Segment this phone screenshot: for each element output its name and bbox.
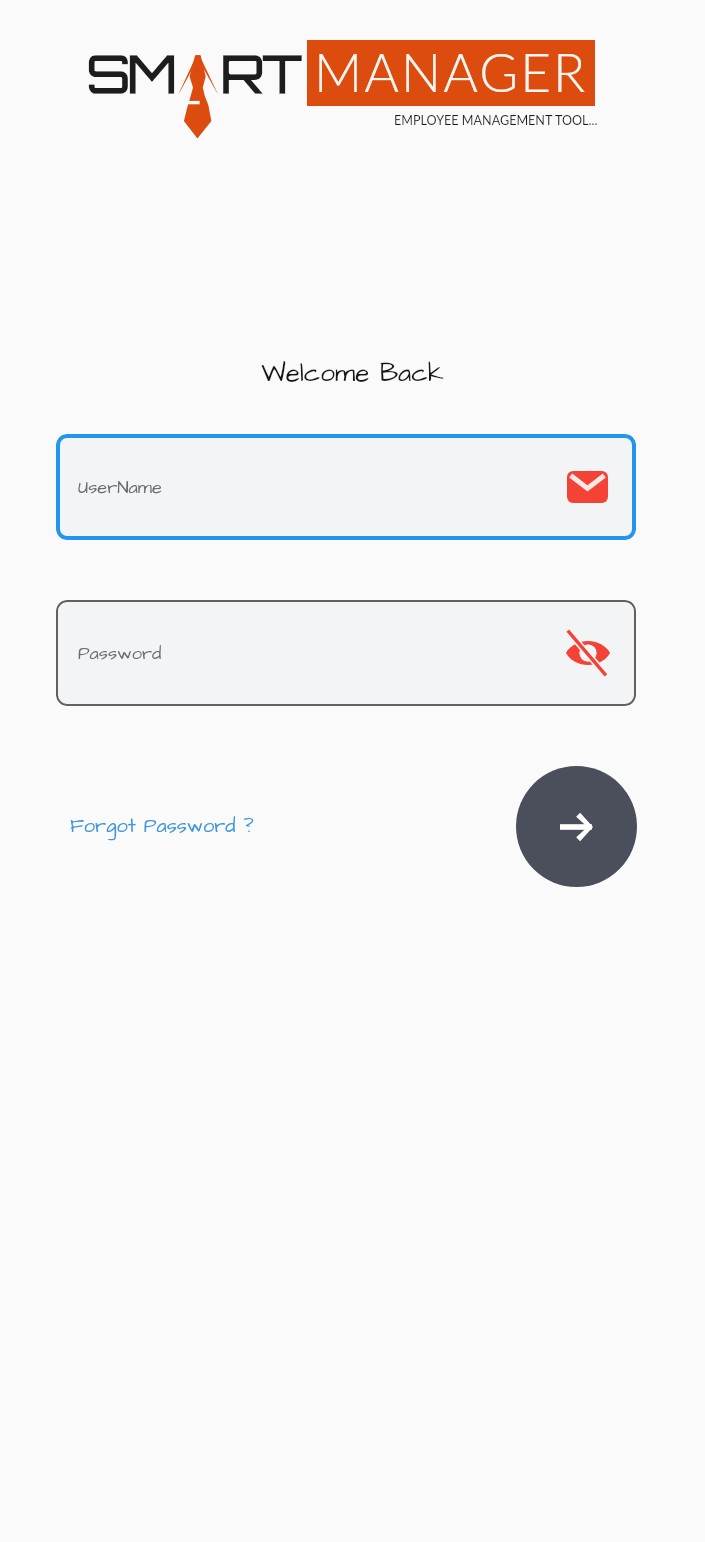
staticText: MANAGER xyxy=(314,40,588,104)
button[interactable]: Password xyxy=(56,600,636,706)
staticText: Welcome Back xyxy=(0,355,705,391)
staticText: SM xyxy=(87,40,175,105)
staticText: Password xyxy=(78,641,162,666)
button[interactable]: UserName xyxy=(56,434,636,540)
staticText: RT xyxy=(221,40,301,105)
staticText: EMPLOYEE MANAGEMENT TOOL... xyxy=(394,113,598,128)
staticText: Forgot Password ? xyxy=(70,812,254,840)
button[interactable]: Show password xyxy=(562,627,614,679)
button[interactable]: Forgot Password ? xyxy=(70,812,254,840)
staticText: UserName xyxy=(78,475,162,500)
button[interactable]: Sign in xyxy=(516,766,637,887)
